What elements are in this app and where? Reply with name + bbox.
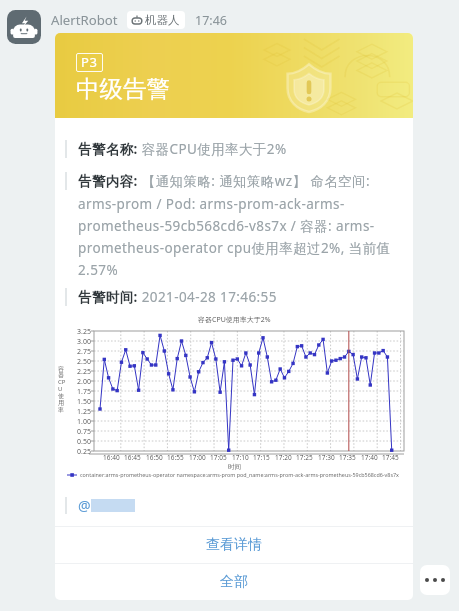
staticText: 16:55 (167, 453, 184, 462)
staticText: 3.00 (77, 337, 91, 347)
staticText: 17:35 (339, 453, 356, 462)
staticText: 告警内容: 【通知策略: 通知策略wz】 命名空间: arms-prom / P… (78, 172, 398, 279)
staticText: 2.50 (77, 357, 91, 367)
staticText: 0.75 (77, 427, 91, 437)
staticText: 容器CPU使用率大于2% (198, 315, 271, 325)
staticText: container:arms-prometheus-operator names… (80, 471, 399, 478)
staticText: 17:46 (195, 12, 227, 29)
staticText: 机器人 (145, 13, 180, 27)
button[interactable]: More options (420, 565, 450, 595)
staticText: 容器CPU使用率 (58, 365, 66, 414)
staticText: 16:50 (146, 453, 163, 462)
staticText: 16:40 (103, 453, 120, 462)
staticText: 2.00 (77, 377, 91, 387)
button[interactable]: 机器人 (131, 13, 180, 27)
button[interactable]: AlertRobot avatar (7, 10, 41, 44)
staticText: 17:00 (189, 453, 206, 462)
staticText: 0.50 (77, 437, 91, 447)
staticText: 告警时间: 2021-04-28 17:46:55 (78, 288, 277, 306)
staticText: 中级告警 (76, 74, 170, 104)
staticText: 17:45 (382, 453, 399, 462)
staticText: 17:30 (318, 453, 335, 462)
staticText: 16:45 (124, 453, 141, 462)
staticText: AlertRobot (51, 11, 118, 29)
staticText: 3.25 (77, 327, 91, 337)
button[interactable]: 查看详情 (55, 527, 413, 563)
staticText: 17:05 (210, 453, 227, 462)
staticText: 1.25 (77, 407, 91, 417)
staticText: 2.75 (77, 347, 91, 357)
staticText: P3 (81, 53, 98, 71)
staticText: 17:40 (361, 453, 378, 462)
staticText: 全部 (220, 573, 248, 591)
staticText: 时间 (228, 463, 241, 471)
staticText: 1.00 (77, 417, 91, 427)
staticText: 17:10 (232, 453, 249, 462)
staticText: 17:25 (296, 453, 313, 462)
staticText: 1.50 (77, 397, 91, 407)
staticText: 告警名称: 容器CPU使用率大于2% (78, 140, 287, 158)
staticText: 2.25 (77, 367, 91, 377)
staticText: 查看详情 (206, 536, 262, 554)
staticText: 0.25 (77, 447, 91, 457)
button[interactable]: 全部 (55, 564, 413, 600)
staticText: 1.75 (77, 387, 91, 397)
staticText: @ (78, 496, 91, 515)
staticText: 17:20 (275, 453, 292, 462)
staticText: 17:15 (253, 453, 270, 462)
